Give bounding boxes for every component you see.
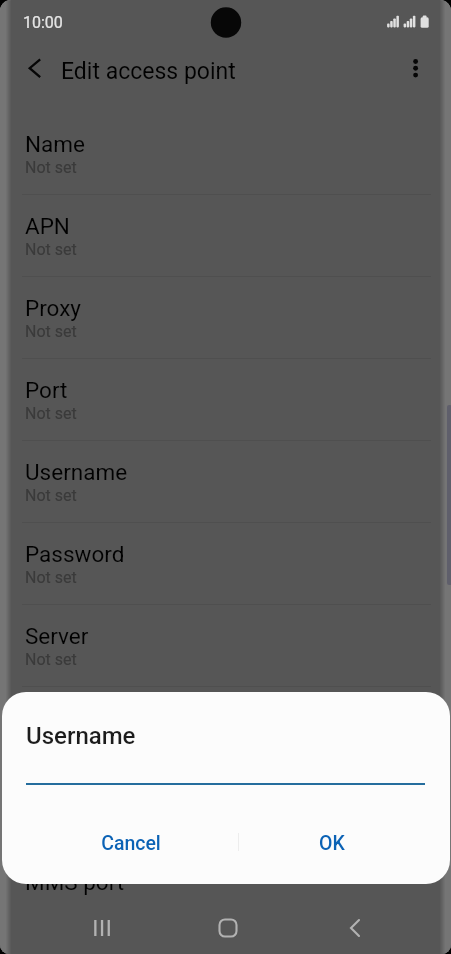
staticText: Not set <box>25 322 77 341</box>
staticText: 10:00 <box>23 13 63 32</box>
staticText: Not set <box>25 568 77 587</box>
button[interactable]: More options <box>398 50 434 86</box>
staticText: MMSC <box>25 705 93 731</box>
button[interactable]: Password <box>0 523 451 605</box>
staticText: Password <box>25 541 125 567</box>
button[interactable]: Back <box>328 901 381 954</box>
staticText: Not set <box>25 486 77 505</box>
staticText: Not set <box>25 240 77 259</box>
staticText: Server <box>25 623 89 649</box>
staticText: OK <box>319 832 345 855</box>
button[interactable]: Server <box>0 605 451 687</box>
staticText: Name <box>25 131 85 157</box>
button[interactable]: Home <box>201 901 254 954</box>
button[interactable]: Username <box>0 441 451 523</box>
button[interactable]: APN <box>0 195 451 277</box>
staticText: Not set <box>25 158 77 177</box>
button[interactable]: Recents <box>76 901 129 954</box>
button[interactable]: Proxy <box>0 277 451 359</box>
staticText: Port <box>25 377 68 403</box>
staticText: Username <box>25 459 128 485</box>
button[interactable]: OK <box>237 816 426 870</box>
staticText: Edit access point <box>61 58 236 85</box>
button[interactable]: MMS port <box>0 851 451 933</box>
staticText: Proxy <box>25 295 82 321</box>
button[interactable]: Name <box>0 113 451 195</box>
button[interactable]: Port <box>0 359 451 441</box>
staticText: Not set <box>25 732 77 751</box>
staticText: MMS port <box>25 869 125 895</box>
staticText: Not set <box>25 404 77 423</box>
button[interactable]: MMS proxy <box>0 769 451 851</box>
button[interactable]: Navigate up <box>13 50 49 86</box>
button[interactable]: Cancel <box>23 816 238 870</box>
staticText: Not set <box>25 650 77 669</box>
button[interactable]: MMSC <box>0 687 451 769</box>
staticText: APN <box>25 213 70 239</box>
staticText: Username <box>26 722 136 750</box>
staticText: Cancel <box>101 832 161 855</box>
